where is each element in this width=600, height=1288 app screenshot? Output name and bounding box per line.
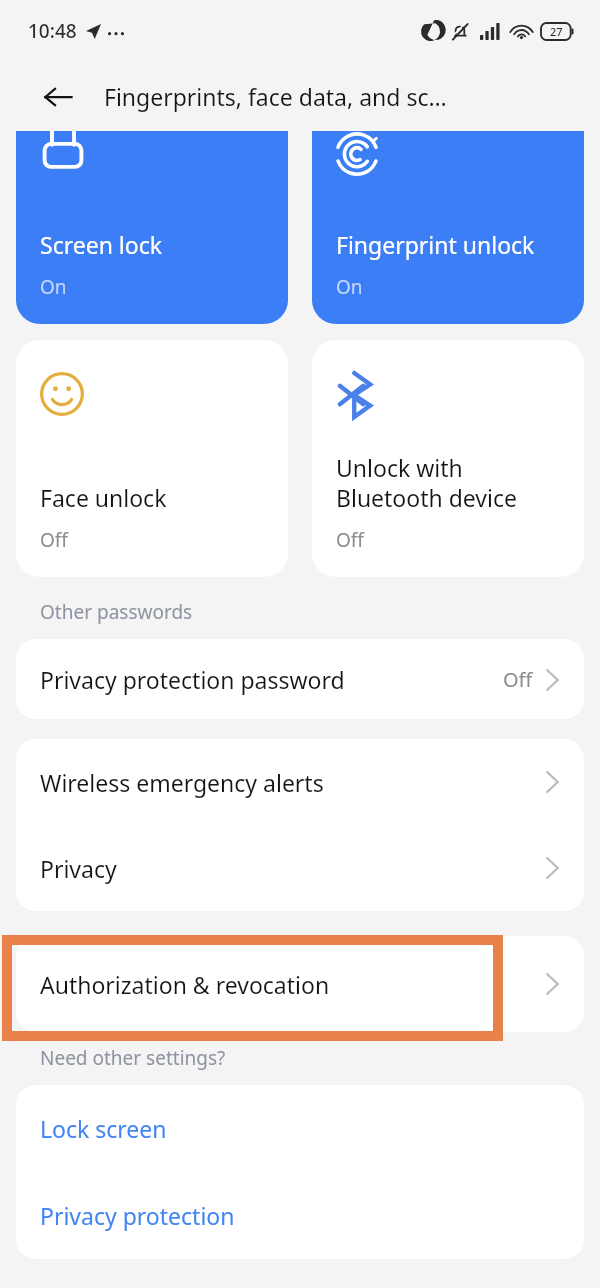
button[interactable]: Fingerprint unlock [312, 131, 584, 324]
staticText: Privacy protection [40, 1200, 235, 1231]
staticText: 27 [550, 24, 563, 39]
staticText: Off [336, 527, 364, 553]
staticText: Fingerprints, face data, and sc… [104, 81, 447, 112]
button[interactable]: Back [32, 71, 84, 123]
staticText: Off [503, 666, 533, 693]
button[interactable]: Screen lock [16, 131, 288, 324]
staticText: Authorization & revocation [40, 969, 330, 1000]
staticText: Lock screen [40, 1113, 167, 1144]
staticText: Need other settings? [40, 1045, 226, 1071]
button[interactable]: Privacy protection [16, 1172, 584, 1259]
staticText: Privacy [40, 853, 117, 884]
button[interactable]: Unlock with Bluetooth device [312, 340, 584, 577]
button[interactable]: Authorization & revocation [16, 936, 584, 1032]
staticText: Off [40, 527, 68, 553]
staticText: Face unlock [40, 482, 167, 513]
staticText: On [336, 274, 363, 300]
staticText: Privacy protection password [40, 664, 345, 695]
staticText: Screen lock [40, 229, 163, 260]
button[interactable]: Privacy protection password [16, 639, 584, 719]
staticText: On [40, 274, 67, 300]
staticText: Unlock with Bluetooth device [336, 452, 517, 513]
staticText: Other passwords [40, 599, 193, 625]
button[interactable]: Wireless emergency alerts [16, 739, 584, 825]
staticText: Fingerprint unlock [336, 229, 535, 260]
staticText: Wireless emergency alerts [40, 767, 324, 798]
button[interactable]: Face unlock [16, 340, 288, 577]
button[interactable]: Privacy [16, 825, 584, 911]
button[interactable]: Lock screen [16, 1085, 584, 1172]
staticText: 10:48 [28, 18, 77, 44]
